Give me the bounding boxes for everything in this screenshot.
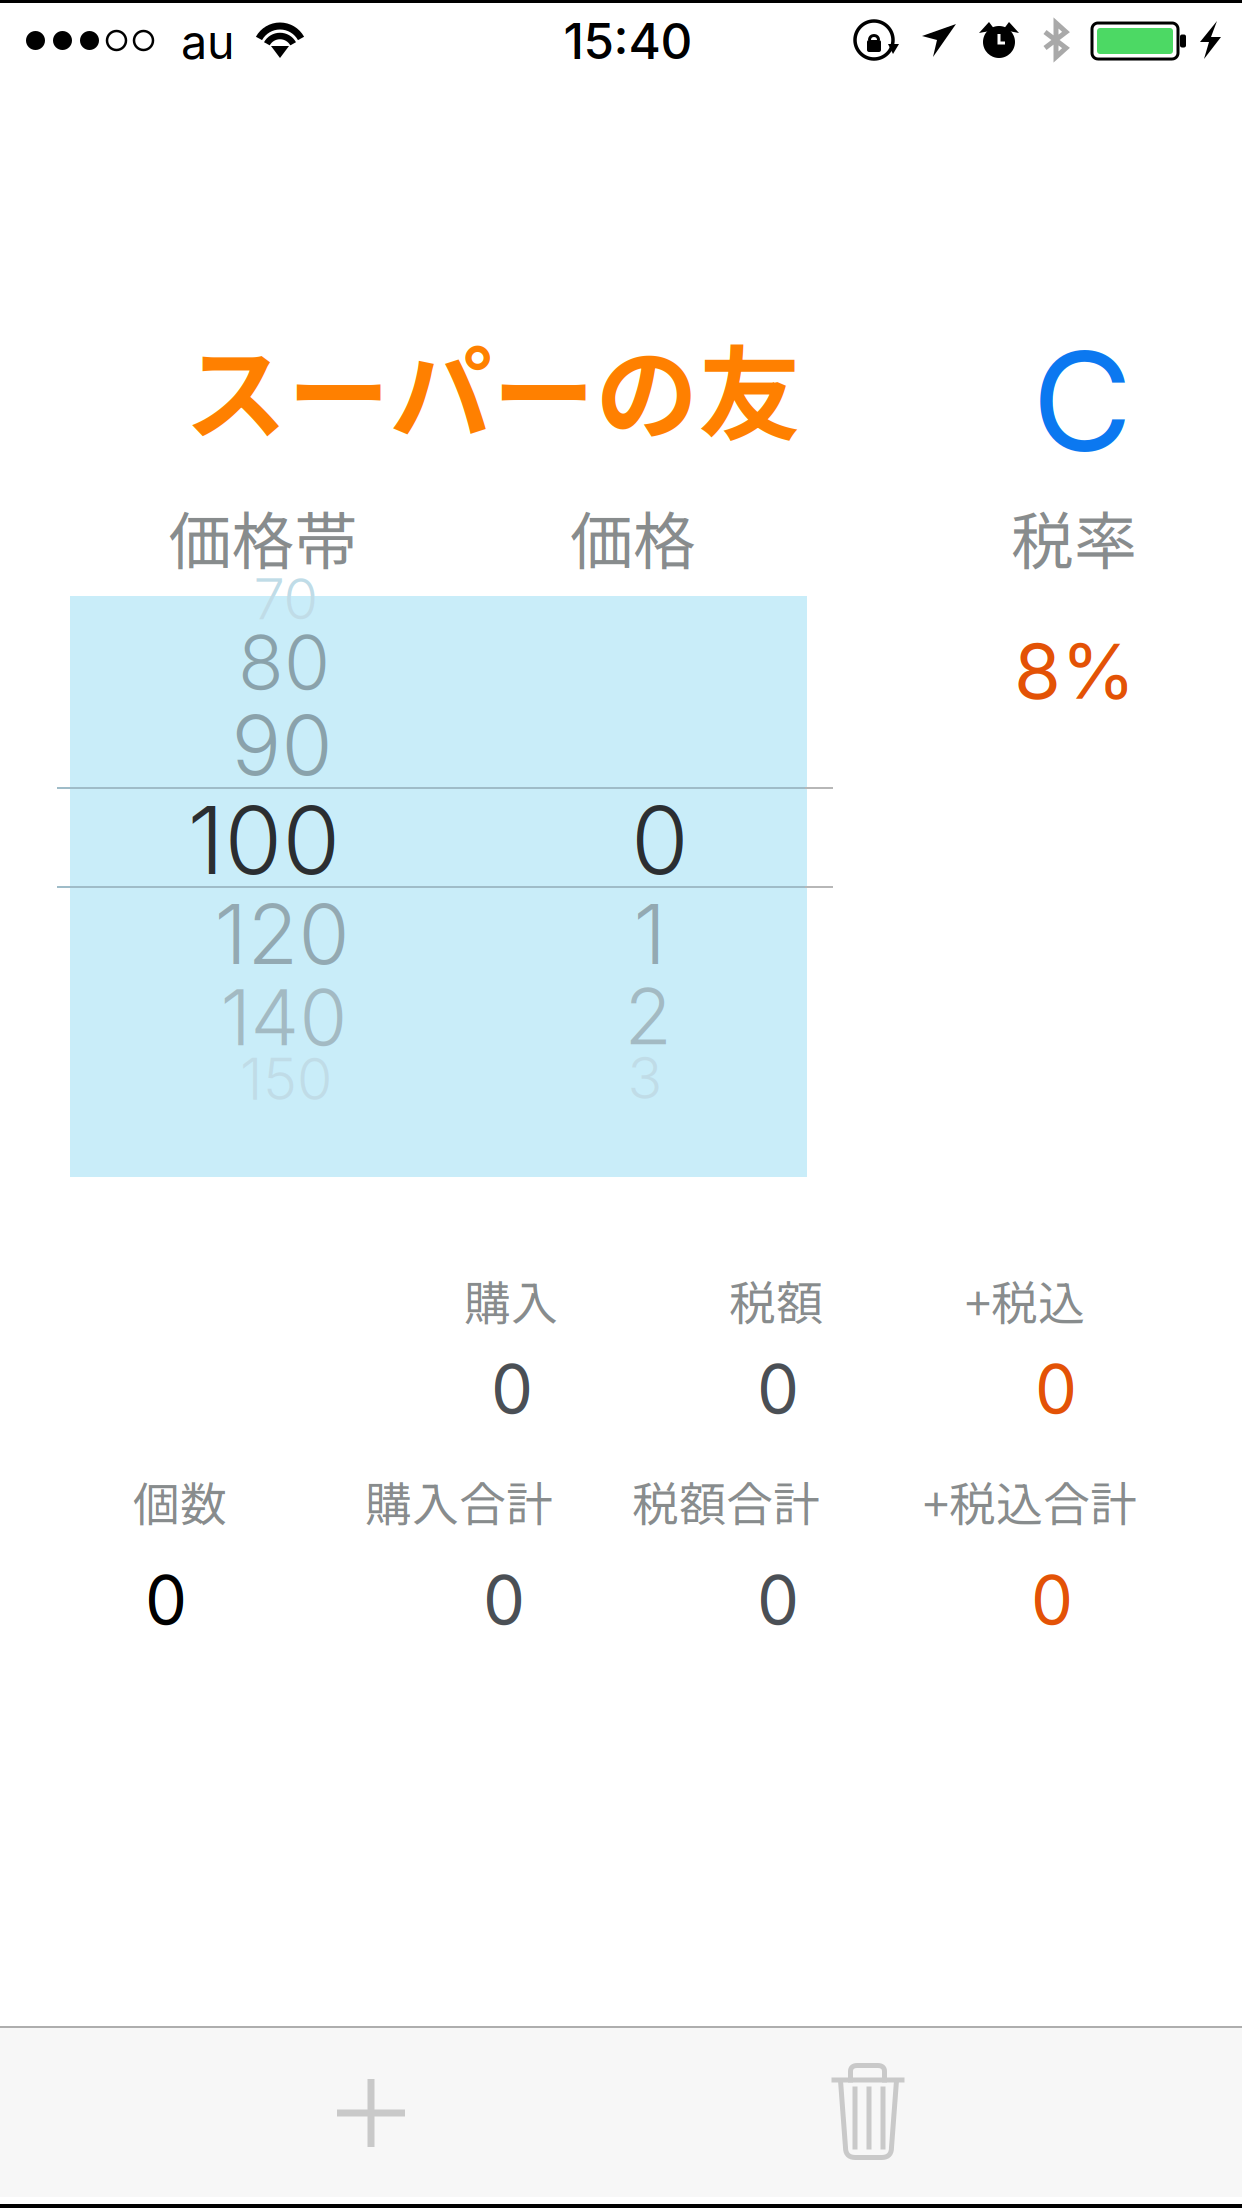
staticText: C [1032,318,1132,484]
staticText: 0 [757,1349,799,1429]
staticText: 150 [240,1044,332,1114]
staticText: 0 [631,783,689,896]
staticText: 0 [491,1349,533,1429]
staticText: 90 [231,695,332,795]
staticText: 70 [253,565,318,633]
staticText: 0 [1031,1560,1073,1640]
staticText: au [181,14,235,70]
staticText: 2 [624,969,671,1063]
staticText: 3 [627,1043,662,1113]
staticText: 税率 [1011,492,1137,582]
button[interactable]: Add [281,2038,461,2188]
button[interactable]: Delete [778,2031,958,2175]
staticText: 8% [1014,625,1136,717]
staticText: 1 [633,884,666,984]
staticText: +税込 [965,1266,1085,1334]
staticText: 税額合計 [632,1467,820,1535]
staticText: 価格帯 [168,492,357,582]
staticText: スーパーの友 [184,313,801,461]
button[interactable]: 8% [955,626,1195,716]
staticText: 0 [757,1560,799,1640]
button[interactable]: Clear [987,326,1177,476]
staticText: 購入 [464,1266,558,1334]
staticText: 価格 [570,492,696,582]
staticText: 個数 [133,1467,227,1535]
staticText: 0 [145,1560,187,1640]
staticText: 140 [220,970,347,1064]
staticText: 15:40 [563,11,692,71]
staticText: 120 [214,884,349,984]
staticText: 税額 [729,1266,823,1334]
staticText: 購入合計 [365,1467,553,1535]
staticText: 100 [187,783,340,896]
staticText: 0 [1035,1349,1077,1429]
staticText: 0 [483,1560,525,1640]
staticText: 80 [238,617,330,707]
staticText: +税込合計 [923,1467,1137,1535]
